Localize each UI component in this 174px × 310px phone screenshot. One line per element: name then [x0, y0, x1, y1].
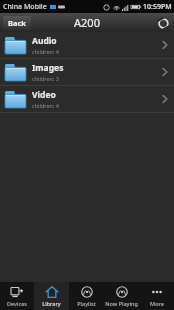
- button[interactable]: More: [139, 282, 174, 310]
- staticText: 10:59PM: [143, 2, 172, 12]
- staticText: A200: [74, 15, 100, 30]
- button[interactable]: Audio: [0, 32, 174, 58]
- staticText: More: [150, 300, 164, 307]
- staticText: Playlist: [77, 300, 96, 307]
- staticText: children: 4: [32, 102, 59, 109]
- button[interactable]: Playlist: [69, 282, 104, 310]
- button[interactable]: Video: [0, 86, 174, 112]
- staticText: Audio: [32, 35, 57, 47]
- button[interactable]: Library: [34, 282, 69, 310]
- staticText: children: 3: [32, 75, 59, 82]
- button[interactable]: Now Playing: [104, 282, 139, 310]
- button[interactable]: Devices: [0, 282, 34, 310]
- staticText: children: 4: [32, 48, 59, 55]
- button[interactable]: Back: [3, 16, 31, 30]
- button[interactable]: Refresh: [156, 16, 170, 30]
- staticText: Video: [32, 89, 56, 101]
- staticText: China Mobile: [3, 2, 47, 12]
- button[interactable]: Images: [0, 59, 174, 85]
- staticText: Back: [8, 18, 26, 28]
- staticText: Images: [32, 62, 64, 74]
- staticText: Now Playing: [105, 300, 138, 307]
- staticText: Devices: [7, 300, 27, 307]
- staticText: Library: [42, 300, 61, 307]
